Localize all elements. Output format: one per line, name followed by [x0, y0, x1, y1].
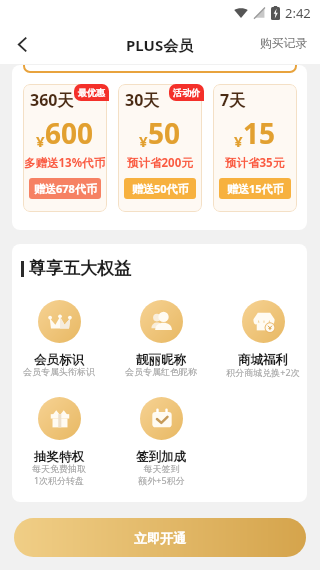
staticText: 最优惠	[78, 87, 105, 98]
button[interactable]: 360天	[23, 84, 107, 212]
button[interactable]: Back	[6, 28, 38, 60]
staticText: 600	[45, 114, 94, 152]
staticText: 会员专属红色昵称	[125, 366, 197, 377]
staticText: 7天	[220, 89, 246, 111]
button[interactable]: 立即开通	[14, 518, 306, 557]
staticText: 2:42	[285, 4, 311, 22]
staticText: ¥	[234, 131, 243, 151]
button[interactable]: 签到加成	[110, 397, 212, 489]
staticText: PLUS会员	[126, 35, 194, 55]
button[interactable]: 抽奖特权	[12, 397, 110, 489]
staticText: 会员标识	[34, 352, 84, 368]
staticText: 赠送15代币	[227, 181, 284, 196]
staticText: 靓丽昵称	[136, 352, 186, 368]
button[interactable]: 会员标识	[12, 300, 110, 379]
staticText: 赠送678代币	[34, 181, 97, 196]
staticText: 购买记录	[260, 36, 308, 51]
staticText: 50	[148, 114, 181, 152]
button[interactable]: 商城福利	[212, 300, 307, 380]
staticText: 预计省35元	[225, 155, 285, 171]
staticText: 15	[243, 114, 276, 152]
staticText: 每天免费抽取 1次积分转盘	[32, 463, 86, 487]
staticText: 尊享五大权益	[29, 258, 131, 279]
staticText: 积分商城兑换+2次	[226, 366, 300, 378]
staticText: 多赠送13%代币	[24, 155, 106, 171]
staticText: 360天	[30, 89, 74, 111]
staticText: ¥	[139, 131, 148, 151]
staticText: 活动价	[173, 87, 200, 98]
staticText: 每天签到 额外+5积分	[138, 463, 185, 487]
staticText: 抽奖特权	[34, 449, 84, 465]
button[interactable]: 靓丽昵称	[110, 300, 212, 379]
button[interactable]: 购买记录	[249, 32, 320, 56]
staticText: 签到加成	[136, 449, 186, 465]
staticText: 会员专属头衔标识	[23, 366, 95, 377]
staticText: ¥	[36, 131, 45, 151]
staticText: 立即开通	[134, 530, 186, 546]
button[interactable]: 30天	[118, 84, 202, 212]
staticText: 30天	[125, 89, 160, 111]
staticText: 赠送50代币	[132, 181, 189, 196]
button[interactable]: 7天	[213, 84, 297, 212]
staticText: 预计省200元	[127, 155, 193, 171]
staticText: 商城福利	[238, 352, 288, 368]
